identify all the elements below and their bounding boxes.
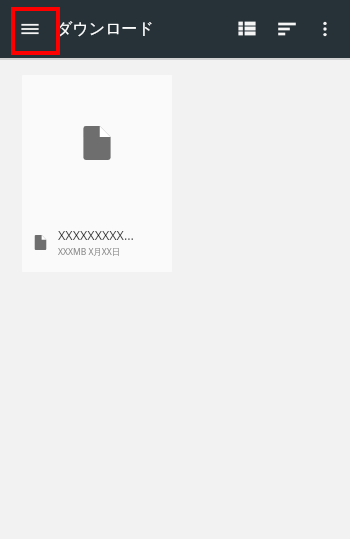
button[interactable]: Navigation menu xyxy=(12,11,48,47)
button[interactable]: Sort xyxy=(270,12,304,46)
button[interactable]: XXXXXXXXX… xyxy=(22,75,172,272)
staticText: ダウンロード xyxy=(56,19,154,39)
staticText: XXXMB X月XX日 xyxy=(58,246,121,258)
button[interactable]: List view xyxy=(230,12,264,46)
button[interactable]: More options xyxy=(308,12,342,46)
staticText: XXXXXXXXX… xyxy=(58,227,134,244)
